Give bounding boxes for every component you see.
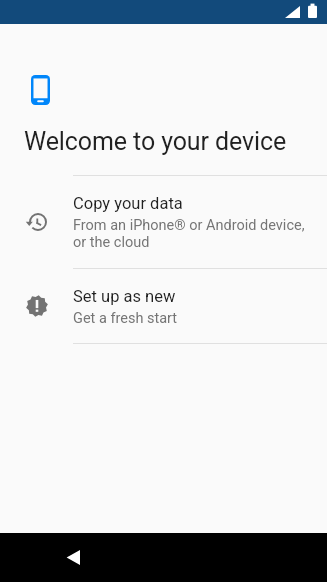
staticText: From an iPhone® or Android device, or th… <box>73 217 305 251</box>
button[interactable]: Back <box>55 533 91 582</box>
staticText: Set up as new <box>73 287 176 306</box>
other: Device <box>31 75 50 105</box>
other: Signal strength <box>285 6 300 18</box>
button[interactable]: Copy your data <box>0 176 327 268</box>
button[interactable]: Set up as new <box>0 269 327 343</box>
staticText: Copy your data <box>73 194 183 213</box>
staticText: Welcome to your device <box>24 127 287 156</box>
staticText: Get a fresh start <box>73 310 178 327</box>
other: Battery <box>308 3 317 18</box>
